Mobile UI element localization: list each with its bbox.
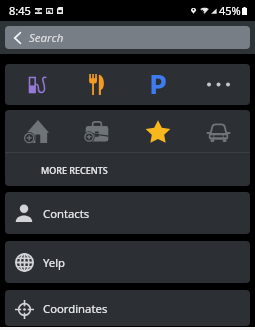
staticText: Search: [29, 30, 64, 46]
staticText: Yelp: [43, 255, 66, 270]
staticText: Coordinates: [43, 301, 108, 316]
button[interactable]: More categories: [189, 64, 247, 105]
staticText: 8:45: [9, 3, 31, 18]
button[interactable]: Coordinates: [5, 290, 250, 326]
button[interactable]: Search: [5, 26, 250, 49]
button[interactable]: Favorites: [129, 110, 187, 152]
staticText: Contacts: [43, 206, 90, 221]
button[interactable]: Parking: [129, 64, 187, 105]
button[interactable]: Work: [68, 110, 126, 152]
staticText: P: [149, 65, 168, 94]
staticText: MORE RECENTS: [41, 164, 108, 176]
button[interactable]: Home: [8, 110, 66, 152]
button[interactable]: Car: [189, 110, 247, 152]
button[interactable]: Yelp: [5, 241, 250, 283]
button[interactable]: Restaurants: [68, 64, 126, 105]
staticText: 45%: [219, 3, 241, 18]
button[interactable]: Contacts: [5, 192, 250, 234]
button[interactable]: MORE RECENTS: [5, 153, 250, 186]
button[interactable]: Gas stations: [8, 64, 66, 105]
